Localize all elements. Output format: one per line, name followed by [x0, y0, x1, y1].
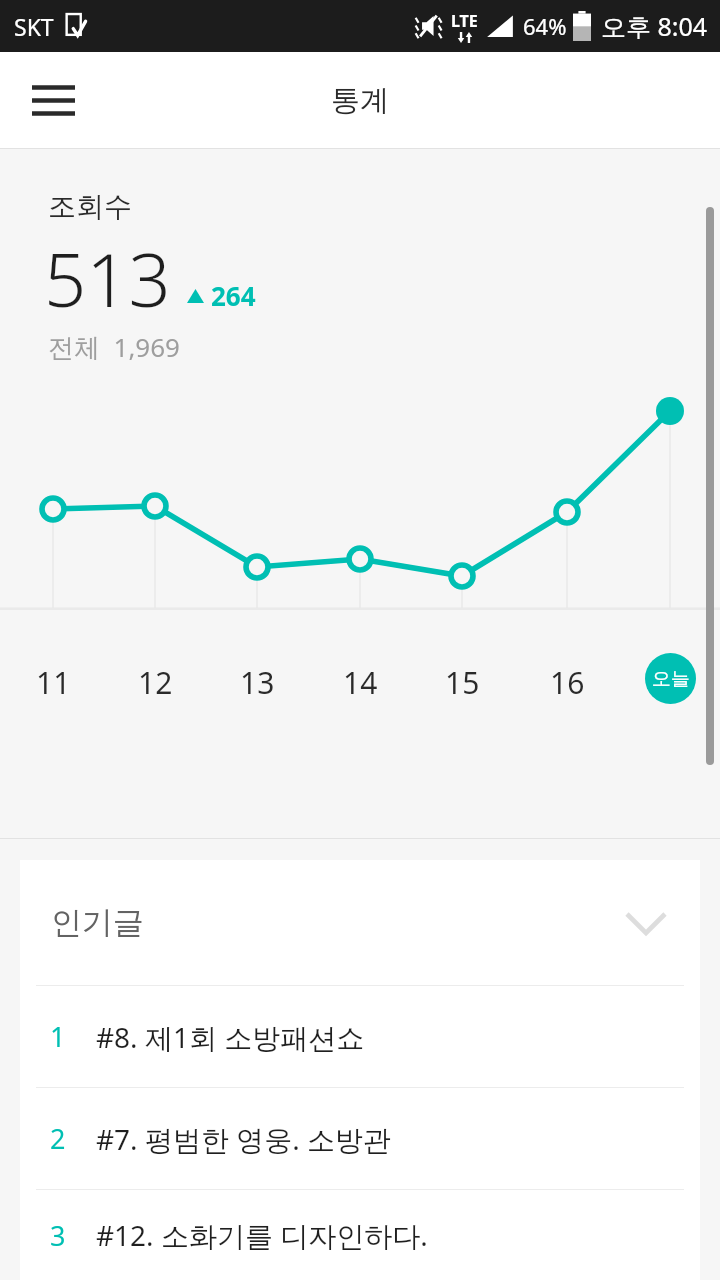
- button[interactable]: 16: [529, 654, 605, 710]
- staticText: 14: [343, 662, 378, 703]
- staticText: 통계: [331, 82, 389, 119]
- staticText: 오후 8:04: [601, 9, 708, 43]
- staticText: 264: [211, 278, 256, 313]
- button[interactable]: 12: [117, 654, 193, 710]
- staticText: 오늘: [652, 667, 690, 691]
- button[interactable]: 11: [15, 654, 91, 710]
- button[interactable]: 2: [20, 1088, 700, 1189]
- staticText: SKT: [14, 11, 54, 42]
- button[interactable]: 13: [219, 654, 295, 710]
- button[interactable]: 14: [322, 654, 398, 710]
- button[interactable]: 1: [20, 986, 700, 1087]
- staticText: 11: [36, 662, 71, 703]
- staticText: 15: [445, 662, 480, 703]
- button[interactable]: 오늘: [645, 653, 696, 704]
- staticText: #12. 소화기를 디자인하다.: [96, 1216, 428, 1254]
- button[interactable]: 인기글: [20, 860, 700, 985]
- staticText: LTE: [451, 10, 478, 32]
- staticText: 전체 1,969: [48, 329, 180, 365]
- staticText: 조회수: [48, 189, 132, 224]
- staticText: 2: [50, 1120, 66, 1157]
- staticText: 64%: [523, 11, 567, 41]
- button[interactable]: 15: [424, 654, 500, 710]
- staticText: 16: [550, 662, 585, 703]
- staticText: 12: [138, 662, 173, 703]
- staticText: 3: [50, 1217, 66, 1254]
- staticText: 513: [44, 228, 171, 329]
- staticText: #8. 제1회 소방패션쇼: [96, 1018, 365, 1056]
- staticText: #7. 평범한 영웅. 소방관: [96, 1120, 391, 1158]
- other: Expand: [622, 899, 670, 947]
- staticText: 인기글: [51, 903, 144, 942]
- button[interactable]: Menu: [22, 69, 84, 131]
- button[interactable]: 3: [20, 1190, 700, 1280]
- staticText: 1: [50, 1018, 66, 1055]
- staticText: 13: [240, 662, 275, 703]
